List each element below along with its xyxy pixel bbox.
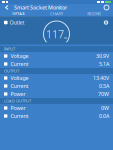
staticText: 13.40V bbox=[93, 74, 109, 82]
staticText: 0.5A bbox=[99, 82, 109, 90]
staticText: Smart Socket Monitor bbox=[14, 4, 67, 11]
button[interactable]: Current bbox=[0, 82, 113, 90]
button[interactable]: RECORD bbox=[75, 11, 113, 18]
button[interactable]: Voltage bbox=[0, 74, 113, 82]
button[interactable]: Current bbox=[0, 60, 113, 68]
button[interactable]: Power bbox=[103, 19, 109, 25]
staticText: Current bbox=[10, 112, 28, 120]
staticText: Voltage bbox=[10, 74, 28, 82]
staticText: Power bbox=[10, 90, 25, 98]
button[interactable]: Power bbox=[0, 104, 113, 112]
staticText: 0.0A bbox=[99, 112, 109, 120]
staticText: 70W bbox=[98, 90, 109, 98]
staticText: w bbox=[64, 35, 67, 40]
button[interactable]: Power bbox=[0, 90, 113, 98]
button[interactable]: Current bbox=[0, 112, 113, 120]
button[interactable]: CHART bbox=[38, 11, 75, 18]
staticText: 5.1A bbox=[99, 60, 109, 68]
staticText: 0W bbox=[101, 104, 109, 112]
staticText: RECORD bbox=[87, 11, 101, 16]
staticText: CHART bbox=[50, 11, 63, 16]
staticText: Voltage bbox=[10, 52, 28, 60]
staticText: Outlet bbox=[10, 19, 25, 26]
button[interactable]: Settings bbox=[103, 4, 110, 11]
staticText: Current bbox=[10, 60, 28, 68]
staticText: INPUT bbox=[4, 46, 15, 52]
staticText: LOAD OUTPUT bbox=[4, 98, 31, 104]
staticText: Current bbox=[10, 82, 28, 90]
staticText: 117 bbox=[46, 27, 64, 41]
button[interactable]: DETAIL bbox=[0, 11, 38, 18]
staticText: OUTPUT bbox=[4, 68, 19, 74]
button[interactable]: Back bbox=[3, 4, 11, 11]
button[interactable]: Voltage bbox=[0, 52, 113, 60]
staticText: DETAIL bbox=[12, 11, 25, 16]
staticText: Power bbox=[10, 104, 25, 112]
staticText: 30.9V bbox=[96, 52, 109, 60]
